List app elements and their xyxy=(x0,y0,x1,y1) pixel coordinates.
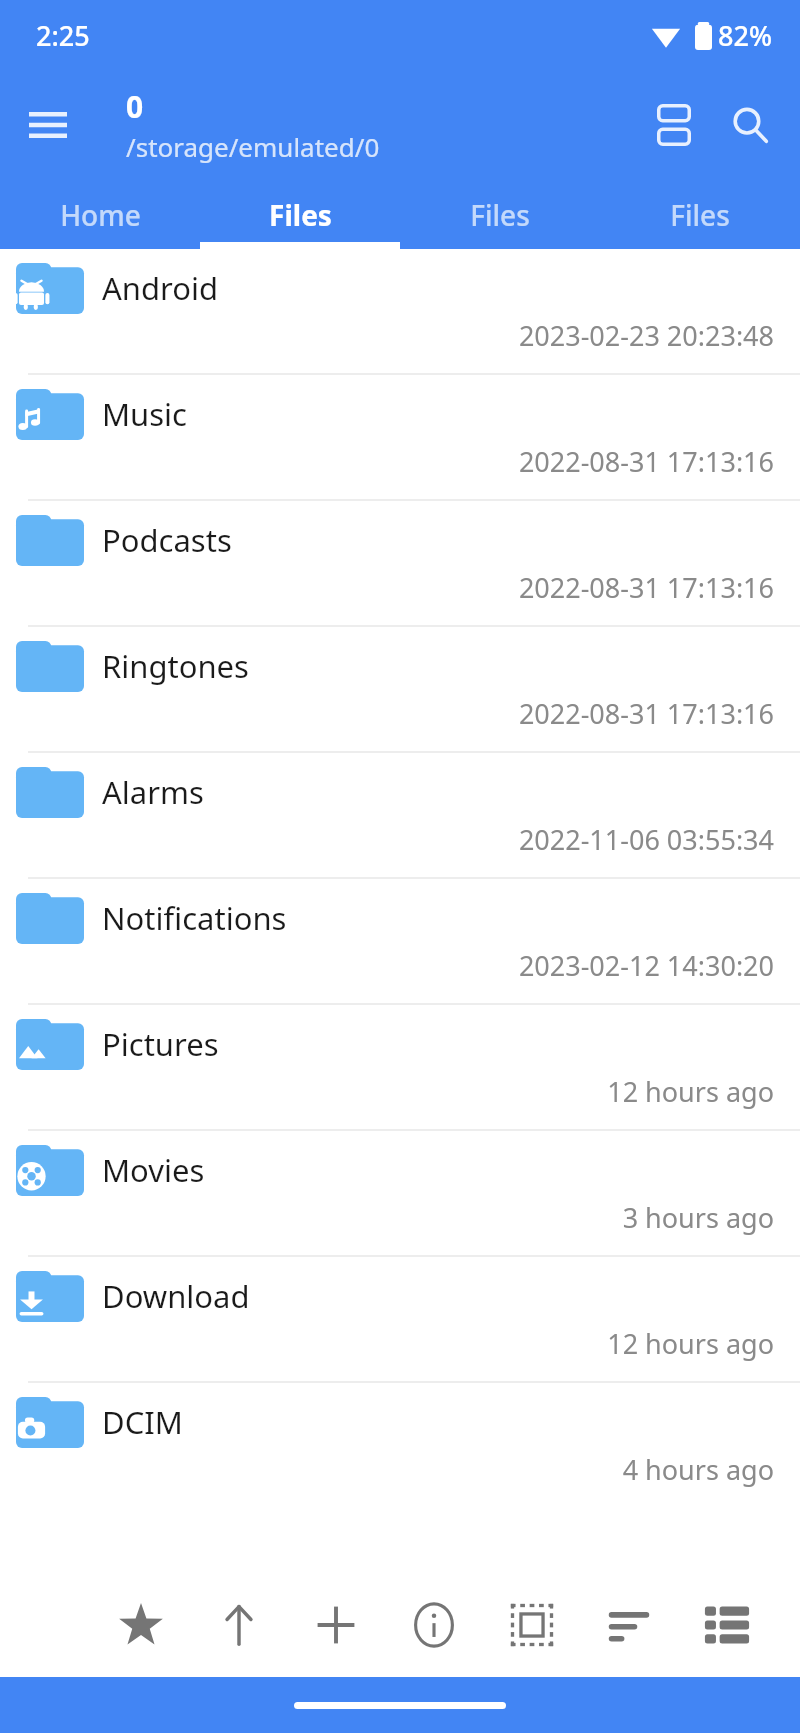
button[interactable]: Split view xyxy=(636,87,712,163)
button[interactable]: Info xyxy=(397,1588,471,1662)
staticText: Music xyxy=(102,393,188,435)
staticText: 12 hours ago xyxy=(607,1325,774,1362)
button[interactable]: Add xyxy=(299,1588,373,1662)
button[interactable]: Move up xyxy=(202,1588,276,1662)
staticText: 2022-11-06 03:55:34 xyxy=(518,821,774,858)
button[interactable]: Notifications xyxy=(0,879,800,1005)
button[interactable]: Select all xyxy=(495,1588,569,1662)
button[interactable]: Files xyxy=(400,180,600,249)
staticText: Podcasts xyxy=(102,519,232,561)
staticText: /storage/emulated/0 xyxy=(126,129,380,164)
staticText: Files xyxy=(670,196,730,234)
button[interactable]: Podcasts xyxy=(0,501,800,627)
button[interactable]: Ringtones xyxy=(0,627,800,753)
staticText: Ringtones xyxy=(102,645,249,687)
staticText: 12 hours ago xyxy=(607,1073,774,1110)
button[interactable]: Android xyxy=(0,249,800,375)
button[interactable]: List view xyxy=(690,1588,764,1662)
staticText: 0 xyxy=(126,86,144,127)
staticText: Notifications xyxy=(102,897,287,939)
staticText: 2022-08-31 17:13:16 xyxy=(518,695,774,732)
button[interactable]: DCIM xyxy=(0,1383,800,1509)
button[interactable]: Home xyxy=(0,180,200,249)
staticText: Files xyxy=(470,196,530,234)
staticText: 2022-08-31 17:13:16 xyxy=(518,443,774,480)
button[interactable]: Sort xyxy=(592,1588,666,1662)
staticText: Alarms xyxy=(102,771,204,813)
staticText: 2022-08-31 17:13:16 xyxy=(518,569,774,606)
button[interactable]: Files xyxy=(600,180,800,249)
staticText: DCIM xyxy=(102,1401,183,1443)
button[interactable]: Favorites xyxy=(104,1588,178,1662)
staticText: Files xyxy=(269,196,332,234)
staticText: 3 hours ago xyxy=(622,1199,774,1236)
staticText: 82% xyxy=(718,17,772,54)
button[interactable]: Search xyxy=(712,87,788,163)
staticText: 2023-02-12 14:30:20 xyxy=(518,947,774,984)
staticText: Pictures xyxy=(102,1023,219,1065)
button[interactable]: Files xyxy=(200,180,400,249)
staticText: 4 hours ago xyxy=(622,1451,774,1488)
button[interactable]: Download xyxy=(0,1257,800,1383)
button[interactable]: Pictures xyxy=(0,1005,800,1131)
staticText: 2:25 xyxy=(36,17,90,54)
staticText: Download xyxy=(102,1275,250,1317)
staticText: Android xyxy=(102,267,219,309)
button[interactable]: Alarms xyxy=(0,753,800,879)
staticText: Movies xyxy=(102,1149,205,1191)
button[interactable]: Music xyxy=(0,375,800,501)
staticText: 2023-02-23 20:23:48 xyxy=(518,317,774,354)
button[interactable]: Movies xyxy=(0,1131,800,1257)
staticText: Home xyxy=(60,196,141,234)
button[interactable]: Navigation menu xyxy=(10,87,86,163)
